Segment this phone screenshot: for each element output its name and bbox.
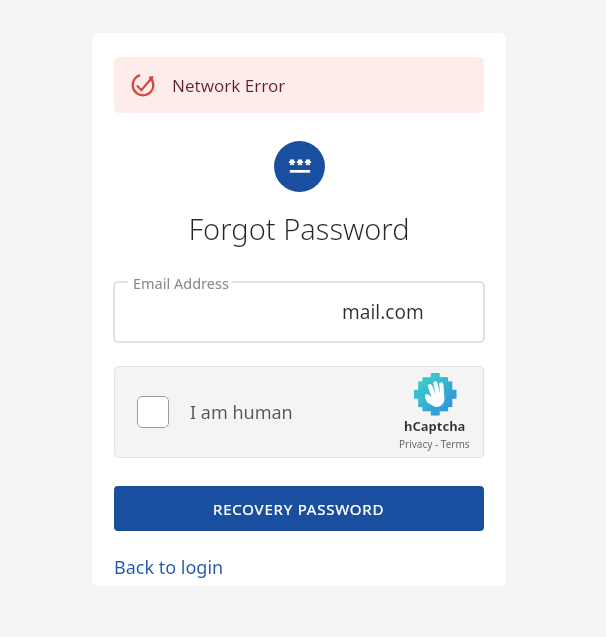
staticText: Privacy - Terms [399,437,470,451]
staticText: Forgot Password [92,209,506,248]
staticText: hCaptcha [404,417,466,435]
staticText: RECOVERY PASSWORD [213,499,385,519]
staticText: I am human [190,400,293,425]
staticText: Email Address [133,273,229,293]
button[interactable]: Email Address [114,272,484,342]
button[interactable]: RECOVERY PASSWORD [114,486,484,531]
staticText: Back to login [114,555,224,580]
staticText: mail.com [342,299,424,325]
button[interactable]: I am human checkbox [114,366,484,458]
button[interactable]: Network Error [114,57,484,113]
button[interactable]: Back to login [114,551,224,584]
button[interactable]: I am human checkbox [137,396,169,428]
staticText: Network Error [172,74,286,97]
